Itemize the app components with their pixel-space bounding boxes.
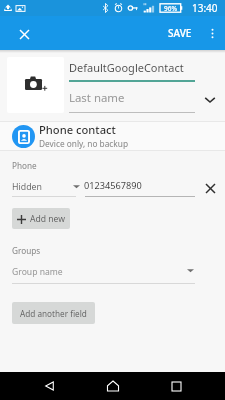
staticText: DefaultGoogleContact bbox=[69, 60, 184, 75]
button[interactable]: Expand name fields bbox=[199, 89, 221, 111]
button[interactable]: Close bbox=[11, 21, 37, 47]
button[interactable]: Back bbox=[35, 372, 63, 400]
button[interactable]: Recent apps bbox=[162, 372, 190, 400]
button[interactable]: Phone contact bbox=[0, 122, 225, 151]
staticText: Device only, no backup bbox=[39, 138, 129, 149]
staticText: Groups bbox=[12, 245, 41, 256]
button[interactable]: Add photo bbox=[7, 57, 64, 113]
staticText: Hidden bbox=[12, 181, 43, 193]
button[interactable]: SAVE bbox=[163, 20, 197, 46]
staticText: Phone bbox=[12, 160, 37, 171]
staticText: Add another field bbox=[20, 308, 87, 319]
staticText: Phone contact bbox=[39, 122, 116, 137]
staticText: 13:40 bbox=[192, 1, 218, 15]
staticText: Add new bbox=[30, 213, 66, 225]
button[interactable]: More options bbox=[199, 20, 225, 46]
staticText: 96% bbox=[164, 4, 177, 13]
staticText: Last name bbox=[69, 90, 125, 106]
staticText: Group name bbox=[12, 266, 63, 278]
button[interactable]: Home bbox=[99, 372, 127, 400]
button[interactable]: Clear phone number bbox=[199, 177, 221, 199]
staticText: SAVE bbox=[168, 26, 192, 40]
staticText: 01234567890 bbox=[84, 179, 142, 192]
button[interactable]: Add another field bbox=[12, 302, 95, 324]
button[interactable]: Add new bbox=[12, 208, 70, 229]
